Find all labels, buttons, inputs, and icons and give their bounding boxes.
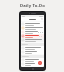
button[interactable]: Search — [41, 18, 43, 20]
button[interactable] — [21, 50, 44, 54]
button[interactable] — [21, 30, 44, 34]
button[interactable] — [21, 58, 44, 62]
button[interactable] — [21, 46, 44, 50]
button[interactable]: Add task — [38, 61, 42, 65]
button[interactable] — [21, 34, 44, 38]
button[interactable] — [21, 62, 44, 66]
button[interactable] — [21, 38, 44, 42]
staticText: Daily To-Do — [20, 3, 45, 9]
button[interactable] — [21, 26, 44, 30]
button[interactable] — [21, 22, 44, 26]
